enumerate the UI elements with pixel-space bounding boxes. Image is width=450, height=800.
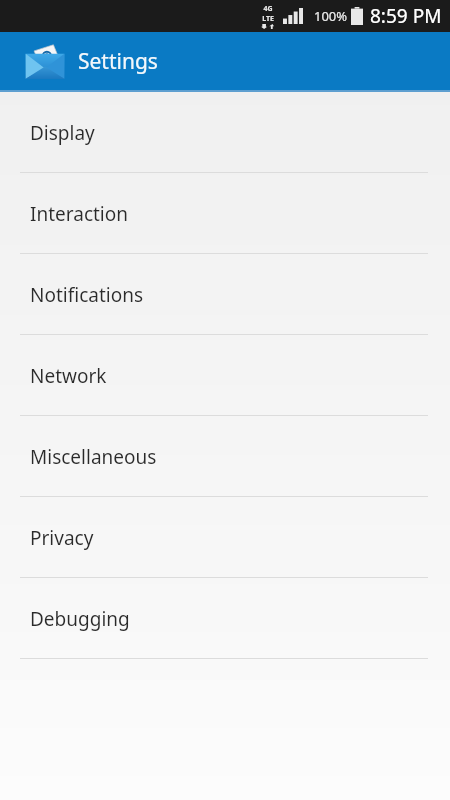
staticText: Debugging xyxy=(30,606,130,632)
button[interactable]: Miscellaneous xyxy=(0,416,450,497)
staticText: 100% xyxy=(314,7,348,25)
staticText: Interaction xyxy=(30,201,129,227)
staticText: Network xyxy=(30,363,107,389)
staticText: 4G xyxy=(263,4,273,14)
staticText: Notifications xyxy=(30,282,144,308)
button[interactable]: Notifications xyxy=(0,254,450,335)
staticText: 8:59 PM xyxy=(370,3,442,29)
button[interactable]: Display xyxy=(0,92,450,173)
button[interactable]: Network xyxy=(0,335,450,416)
staticText: Privacy xyxy=(30,525,94,551)
staticText: Display xyxy=(30,120,95,146)
button[interactable]: Privacy xyxy=(0,497,450,578)
staticText: Miscellaneous xyxy=(30,444,157,470)
button[interactable]: Debugging xyxy=(0,578,450,659)
staticText: Settings xyxy=(78,47,158,76)
button[interactable]: Interaction xyxy=(0,173,450,254)
staticText: LTE xyxy=(262,14,274,24)
